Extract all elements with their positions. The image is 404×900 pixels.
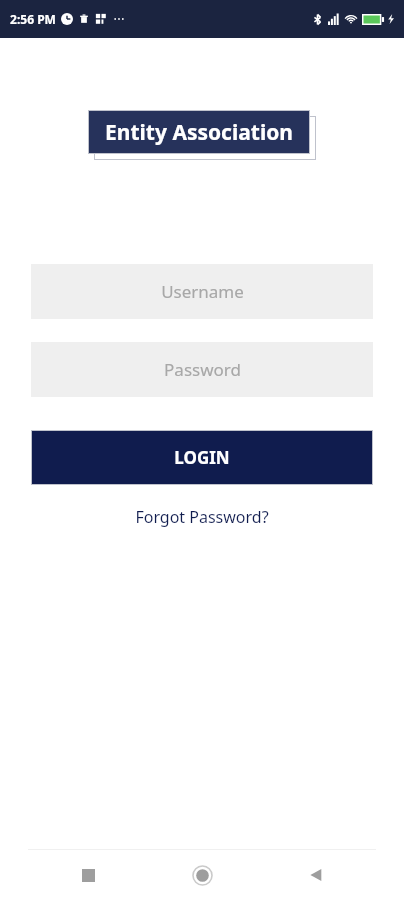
button[interactable]: Back — [290, 850, 342, 900]
button[interactable]: Username — [31, 264, 373, 319]
staticText: 2:56 PM — [10, 11, 56, 27]
button[interactable]: Forgot Password? — [127, 503, 277, 531]
staticText: Entity Association — [105, 118, 293, 147]
button[interactable]: Home — [176, 850, 228, 900]
button[interactable]: LOGIN — [31, 430, 373, 485]
button[interactable]: Recent apps — [62, 850, 114, 900]
button[interactable]: Password — [31, 342, 373, 397]
staticText: Username — [161, 280, 244, 303]
staticText: LOGIN — [174, 446, 230, 469]
staticText: Password — [164, 358, 241, 381]
